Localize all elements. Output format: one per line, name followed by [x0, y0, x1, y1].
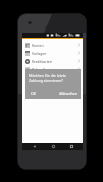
button[interactable]: Vorlagen [22, 49, 83, 57]
button[interactable]: Kreditkarten [22, 57, 83, 65]
staticText: Kreditkarten [32, 59, 78, 64]
button[interactable]: Belege/Legi [22, 65, 83, 73]
button[interactable]: OK [29, 90, 38, 97]
button[interactable]: Abbrechen [57, 90, 79, 97]
staticText: Konten [32, 43, 78, 48]
button[interactable]: Recent apps [65, 143, 77, 150]
button[interactable]: Back [28, 143, 40, 150]
staticText: OK [31, 91, 36, 96]
button[interactable]: Konten [22, 41, 83, 49]
staticText: Abbrechen [59, 91, 77, 96]
staticText: Möchten Sie die letzte Zahlung storniere… [29, 73, 67, 83]
staticText: Vorlagen [32, 51, 78, 56]
button[interactable]: Home [47, 143, 59, 150]
staticText: Belege/Legi [32, 67, 78, 72]
